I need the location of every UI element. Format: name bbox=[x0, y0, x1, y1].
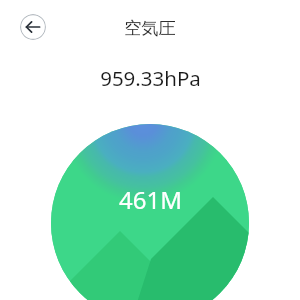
staticText: 461M bbox=[119, 183, 182, 211]
staticText: 空気圧 bbox=[124, 17, 176, 39]
staticText: 959.33hPa bbox=[100, 64, 201, 92]
button[interactable]: Back bbox=[20, 14, 46, 40]
